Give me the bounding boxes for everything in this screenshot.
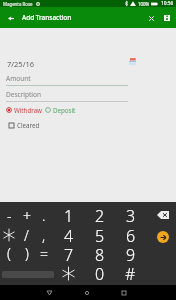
button[interactable]: /	[18, 225, 35, 245]
staticText: Withdraw	[14, 106, 42, 114]
button[interactable]: +	[18, 205, 35, 225]
staticText: 3	[126, 205, 136, 225]
staticText: ,	[42, 226, 46, 245]
button[interactable]: #	[115, 263, 146, 284]
button[interactable]: Amount	[6, 74, 128, 86]
button[interactable]: 8	[84, 244, 115, 263]
staticText: /	[24, 226, 29, 245]
staticText: 6	[126, 225, 136, 245]
button[interactable]: Home	[81, 287, 93, 299]
staticText: Deposit	[53, 106, 76, 114]
button[interactable]: Save	[159, 10, 175, 26]
button[interactable]: -	[0, 205, 18, 225]
staticText: 100%	[138, 1, 150, 7]
button[interactable]: 7	[53, 244, 84, 263]
staticText: 5	[95, 225, 105, 245]
staticText: Amount	[6, 74, 31, 83]
button[interactable]: 9	[115, 244, 146, 263]
button[interactable]: 0	[84, 263, 115, 284]
staticText: Description	[6, 90, 41, 99]
button[interactable]: )	[18, 244, 35, 263]
button[interactable]: (	[0, 244, 18, 263]
button[interactable]: Back	[43, 287, 55, 299]
button[interactable]: 1	[53, 205, 84, 225]
staticText: Cleared	[17, 121, 40, 129]
staticText: +	[23, 206, 31, 225]
staticText: 7	[64, 244, 74, 263]
staticText: 2	[95, 205, 105, 225]
button[interactable]: ,	[35, 225, 52, 245]
button[interactable]: Cleared	[8, 120, 41, 130]
staticText: =	[40, 244, 48, 263]
button[interactable]	[0, 225, 18, 245]
button[interactable]: Space	[0, 263, 58, 284]
staticText: 1	[64, 205, 74, 225]
button[interactable]: Recents	[118, 287, 130, 299]
button[interactable]: =	[35, 244, 52, 263]
button[interactable]: .	[35, 205, 52, 225]
staticText: 0	[95, 263, 105, 284]
button[interactable]: Close	[143, 10, 159, 26]
button[interactable]: 4	[53, 225, 84, 245]
staticText: 10:56	[161, 0, 174, 7]
staticText: Add Transaction	[22, 13, 72, 22]
staticText: )	[25, 244, 29, 263]
staticText: 8	[95, 244, 105, 263]
button[interactable]: 6	[115, 225, 146, 245]
staticText: (	[7, 244, 11, 263]
button[interactable]: Withdraw	[5, 105, 43, 115]
staticText: 4	[64, 225, 74, 245]
button[interactable]	[53, 263, 84, 284]
staticText: #	[125, 263, 136, 284]
button[interactable]: Description	[6, 90, 128, 102]
staticText: Magenta Rose	[3, 1, 33, 7]
button[interactable]: Pick date	[126, 55, 139, 68]
button[interactable]: 3	[115, 205, 146, 225]
button[interactable]: 5	[84, 225, 115, 245]
staticText: -	[7, 206, 12, 225]
button[interactable]: 2	[84, 205, 115, 225]
staticText: 7/25/16	[7, 59, 35, 69]
button[interactable]: Deposit	[44, 105, 77, 115]
staticText: 9	[126, 244, 136, 263]
button[interactable]: Backspace	[154, 207, 172, 223]
button[interactable]: Back	[3, 10, 19, 26]
staticText: .	[42, 206, 46, 225]
button[interactable]: Enter	[154, 228, 172, 246]
